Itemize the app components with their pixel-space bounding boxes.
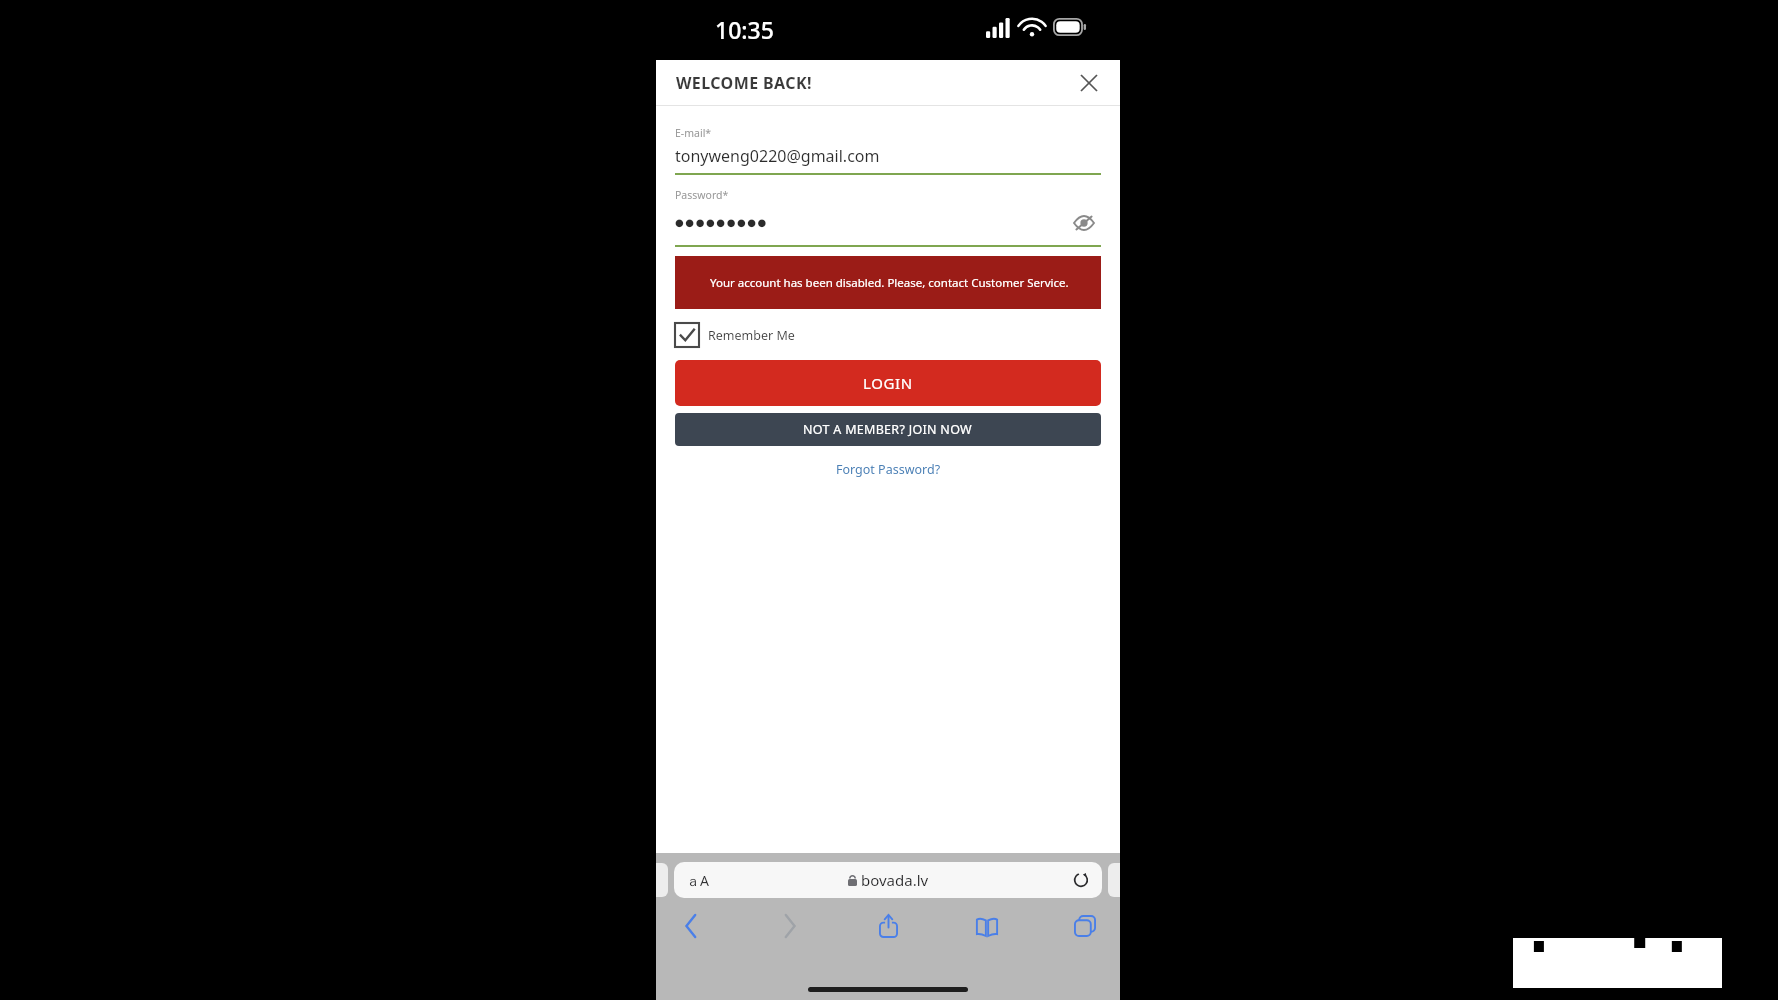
- staticText: bovada.lv: [861, 870, 929, 890]
- staticText: ａA: [686, 871, 709, 890]
- staticText: Your account has been disabled. Please, …: [710, 275, 1069, 291]
- button[interactable]: Back: [670, 906, 712, 946]
- staticText: NOT A MEMBER? JOIN NOW: [803, 421, 973, 438]
- button[interactable]: Show password: [1067, 206, 1101, 240]
- staticText: ●●●●●●●●●: [675, 217, 768, 229]
- button[interactable]: Close: [1072, 66, 1106, 100]
- button[interactable]: ａA: [674, 862, 1102, 898]
- staticText: Forgot Password?: [836, 461, 941, 478]
- button[interactable]: Remember Me: [675, 320, 795, 350]
- button[interactable]: Previous tab: [656, 863, 668, 897]
- button[interactable]: Share: [867, 906, 909, 946]
- staticText: LOGIN: [863, 373, 913, 393]
- button[interactable]: Next tab: [1108, 863, 1120, 897]
- button[interactable]: Reload: [1068, 867, 1094, 893]
- button[interactable]: Forgot Password?: [675, 458, 1101, 481]
- button[interactable]: LOGIN: [675, 360, 1101, 406]
- button[interactable]: Tabs: [1064, 906, 1106, 946]
- staticText: tonyweng0220@gmail.com: [675, 145, 880, 167]
- staticText: WELCOME BACK!: [676, 72, 812, 94]
- staticText: Password*: [675, 188, 729, 202]
- button[interactable]: Bookmarks: [966, 906, 1008, 946]
- staticText: Remember Me: [708, 327, 795, 344]
- staticText: E-mail*: [675, 126, 712, 140]
- button[interactable]: Forward: [769, 906, 811, 946]
- button[interactable]: NOT A MEMBER? JOIN NOW: [675, 413, 1101, 446]
- staticText: 10:35: [715, 14, 774, 45]
